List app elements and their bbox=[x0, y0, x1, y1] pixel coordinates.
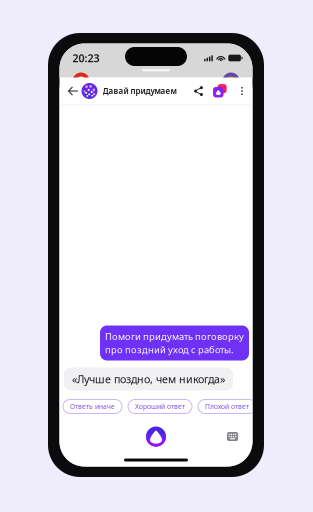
staticText: Давай придумаем bbox=[102, 86, 176, 96]
staticText: 20:23 bbox=[72, 51, 99, 65]
button[interactable]: Share bbox=[191, 79, 205, 103]
button[interactable]: Ответь иначе bbox=[63, 399, 122, 413]
staticText: Хороший ответ bbox=[135, 402, 185, 411]
staticText: «Лучше поздно, чем никогда» bbox=[72, 372, 225, 386]
button[interactable]: Keyboard bbox=[222, 426, 242, 446]
button[interactable]: Хороший ответ bbox=[128, 399, 192, 413]
staticText: Ответь иначе bbox=[70, 402, 115, 411]
button[interactable]: Back bbox=[65, 79, 80, 103]
button[interactable]: Плохой ответ bbox=[198, 399, 256, 413]
staticText: про поздний уход с работы. bbox=[105, 343, 234, 356]
button[interactable]: More options bbox=[236, 79, 247, 103]
staticText: Плохой ответ bbox=[205, 402, 249, 411]
button[interactable]: Talk to Alice bbox=[141, 421, 171, 451]
button[interactable]: Shedevrum bbox=[211, 79, 227, 103]
staticText: Помоги придумать поговорку bbox=[105, 330, 244, 342]
